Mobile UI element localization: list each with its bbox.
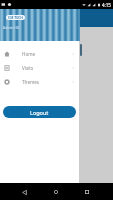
staticText: Home <box>22 51 36 57</box>
button[interactable]: Back <box>16 184 32 200</box>
staticText: CM TECH <box>8 15 23 20</box>
button[interactable]: Themes <box>0 75 79 89</box>
button[interactable]: Home <box>0 47 79 61</box>
staticText: Logout <box>30 109 49 116</box>
button[interactable]: Home <box>48 184 64 200</box>
staticText: Themes <box>22 79 40 85</box>
button[interactable]: Logout <box>3 106 76 118</box>
button[interactable]: Recents <box>79 184 95 200</box>
staticText: 4:15 <box>102 2 111 8</box>
staticText: Visits <box>22 65 34 71</box>
button[interactable]: Visits <box>0 61 79 75</box>
staticText: Admin HO <box>3 25 20 30</box>
